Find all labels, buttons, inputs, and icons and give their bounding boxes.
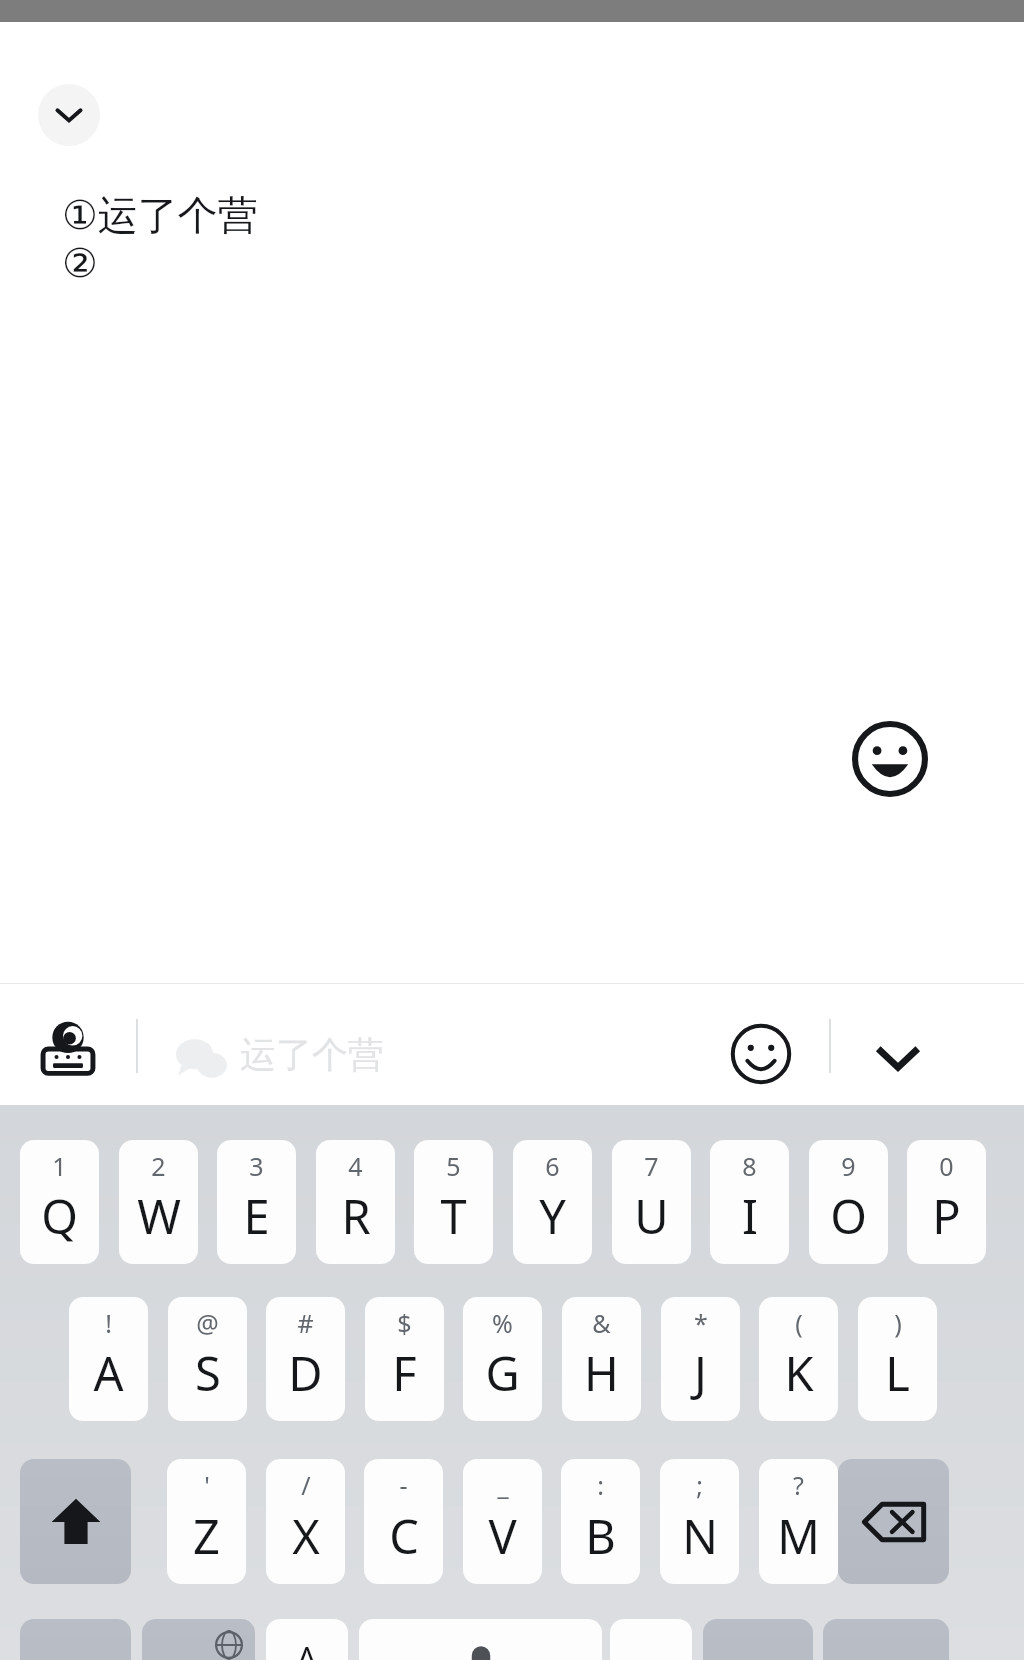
- button[interactable]: &: [562, 1297, 641, 1421]
- button[interactable]: ': [167, 1459, 246, 1584]
- staticText: L: [885, 1341, 910, 1405]
- staticText: 9: [841, 1149, 856, 1183]
- button[interactable]: !: [69, 1297, 148, 1421]
- button[interactable]: 1: [20, 1140, 99, 1264]
- button[interactable]: _: [463, 1459, 542, 1584]
- button[interactable]: 123: [703, 1619, 813, 1660]
- staticText: 5: [446, 1149, 461, 1183]
- button[interactable]: $: [365, 1297, 444, 1421]
- staticText: $: [397, 1306, 412, 1340]
- button[interactable]: 4: [316, 1140, 395, 1264]
- staticText: I: [742, 1184, 758, 1248]
- staticText: M: [777, 1504, 820, 1568]
- button[interactable]: @: [168, 1297, 247, 1421]
- button[interactable]: #: [266, 1297, 345, 1421]
- staticText: Q: [41, 1184, 78, 1248]
- button[interactable]: A: [266, 1619, 348, 1660]
- staticText: (: [795, 1306, 803, 1340]
- staticText: 运了个营: [240, 1032, 384, 1077]
- button[interactable]: [610, 1619, 692, 1660]
- button[interactable]: 6: [513, 1140, 592, 1264]
- staticText: R: [341, 1184, 371, 1248]
- staticText: C: [389, 1504, 419, 1568]
- button[interactable]: Space: [359, 1619, 602, 1660]
- staticText: ?: [793, 1468, 804, 1502]
- button[interactable]: 5: [414, 1140, 493, 1264]
- staticText: 8: [742, 1149, 757, 1183]
- button[interactable]: 9: [809, 1140, 888, 1264]
- staticText: @: [196, 1306, 219, 1340]
- button[interactable]: %: [463, 1297, 542, 1421]
- staticText: J: [694, 1341, 707, 1405]
- staticText: S: [195, 1341, 221, 1405]
- staticText: ②: [62, 240, 98, 287]
- staticText: *: [694, 1306, 708, 1340]
- button[interactable]: 8: [710, 1140, 789, 1264]
- staticText: T: [440, 1184, 467, 1248]
- button[interactable]: Enter: [823, 1619, 949, 1660]
- button[interactable]: Hide keyboard: [858, 1017, 938, 1097]
- staticText: D: [288, 1341, 323, 1405]
- staticText: U: [634, 1184, 669, 1248]
- staticText: K: [784, 1341, 814, 1405]
- button[interactable]: Emoji: [852, 721, 928, 797]
- button[interactable]: Collapse: [38, 84, 100, 146]
- staticText: F: [392, 1341, 417, 1405]
- button[interactable]: ?: [759, 1459, 838, 1584]
- staticText: Z: [193, 1504, 220, 1568]
- staticText: 1: [52, 1149, 67, 1183]
- button[interactable]: /: [266, 1459, 345, 1584]
- button[interactable]: ): [858, 1297, 937, 1421]
- staticText: V: [488, 1504, 517, 1568]
- staticText: 0: [939, 1149, 954, 1183]
- staticText: G: [485, 1341, 520, 1405]
- staticText: ;: [696, 1468, 703, 1502]
- button[interactable]: -: [364, 1459, 443, 1584]
- button[interactable]: :: [561, 1459, 640, 1584]
- button[interactable]: [20, 1459, 131, 1584]
- staticText: 7: [644, 1149, 659, 1183]
- staticText: Y: [539, 1184, 566, 1248]
- button[interactable]: Emoji panel: [724, 1017, 798, 1091]
- button[interactable]: 3: [217, 1140, 296, 1264]
- button[interactable]: 0: [907, 1140, 986, 1264]
- button[interactable]: (: [759, 1297, 838, 1421]
- staticText: -: [399, 1468, 408, 1502]
- staticText: E: [243, 1184, 270, 1248]
- staticText: _: [497, 1468, 509, 1502]
- staticText: W: [137, 1184, 181, 1248]
- button[interactable]: 英: [142, 1619, 255, 1660]
- staticText: B: [585, 1504, 616, 1568]
- button[interactable]: 2: [119, 1140, 198, 1264]
- staticText: 3: [249, 1149, 264, 1183]
- button[interactable]: 7: [612, 1140, 691, 1264]
- button[interactable]: *: [661, 1297, 740, 1421]
- button[interactable]: Input method: [30, 1011, 106, 1087]
- staticText: ): [894, 1306, 902, 1340]
- staticText: #: [297, 1306, 314, 1340]
- staticText: A: [296, 1636, 318, 1660]
- staticText: 4: [348, 1149, 363, 1183]
- button[interactable]: Backspace: [838, 1459, 949, 1584]
- button[interactable]: 符号: [20, 1619, 131, 1660]
- staticText: X: [292, 1504, 320, 1568]
- staticText: 2: [151, 1149, 166, 1183]
- staticText: :: [597, 1468, 604, 1502]
- staticText: ①运了个营: [62, 190, 258, 240]
- staticText: N: [682, 1504, 718, 1568]
- staticText: H: [584, 1341, 619, 1405]
- staticText: 6: [545, 1149, 560, 1183]
- staticText: &: [592, 1306, 611, 1340]
- staticText: A: [93, 1341, 124, 1405]
- staticText: !: [105, 1306, 112, 1340]
- staticText: ': [204, 1468, 210, 1502]
- button[interactable]: ;: [660, 1459, 739, 1584]
- staticText: /: [301, 1468, 311, 1502]
- staticText: O: [830, 1184, 867, 1248]
- staticText: %: [492, 1306, 513, 1340]
- staticText: P: [932, 1184, 961, 1248]
